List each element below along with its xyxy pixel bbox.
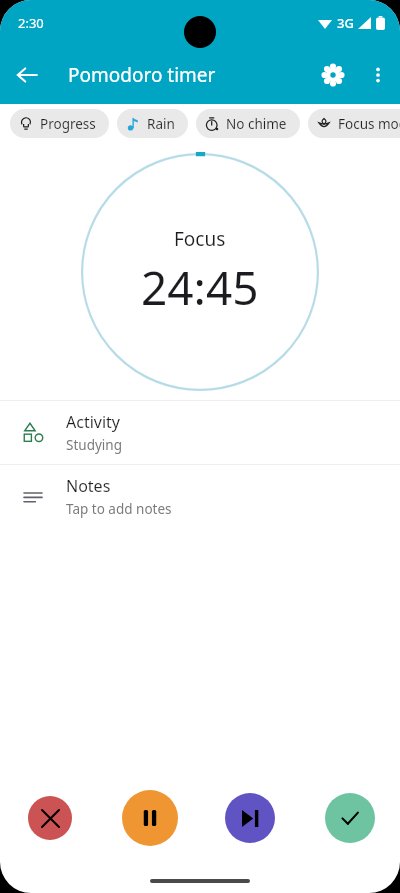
- button[interactable]: More options: [356, 53, 400, 97]
- button[interactable]: Settings: [310, 52, 356, 98]
- button[interactable]: Done: [325, 793, 375, 843]
- staticText: Tap to add notes: [66, 500, 172, 518]
- staticText: Progress: [40, 115, 96, 133]
- button[interactable]: Back: [3, 51, 51, 99]
- button[interactable]: Activity: [0, 401, 400, 464]
- staticText: Rain: [147, 115, 175, 133]
- staticText: 2:30: [18, 14, 44, 32]
- staticText: Studying: [66, 436, 122, 454]
- staticText: Pomodoro timer: [68, 62, 216, 88]
- button[interactable]: No chime: [196, 109, 300, 138]
- staticText: Activity: [66, 411, 121, 433]
- staticText: No chime: [226, 115, 287, 133]
- staticText: Focus: [174, 226, 226, 252]
- button[interactable]: Stop: [28, 796, 72, 840]
- button[interactable]: Pause: [122, 790, 178, 846]
- button[interactable]: Progress: [10, 109, 109, 138]
- staticText: Focus mode: [338, 115, 400, 133]
- button[interactable]: Notes: [0, 465, 400, 528]
- button[interactable]: Skip: [225, 793, 275, 843]
- button[interactable]: Focus mode: [308, 109, 400, 138]
- staticText: 24:45: [141, 256, 259, 319]
- button[interactable]: Rain: [117, 109, 188, 138]
- staticText: 3G: [337, 14, 354, 32]
- staticText: Notes: [66, 475, 111, 497]
